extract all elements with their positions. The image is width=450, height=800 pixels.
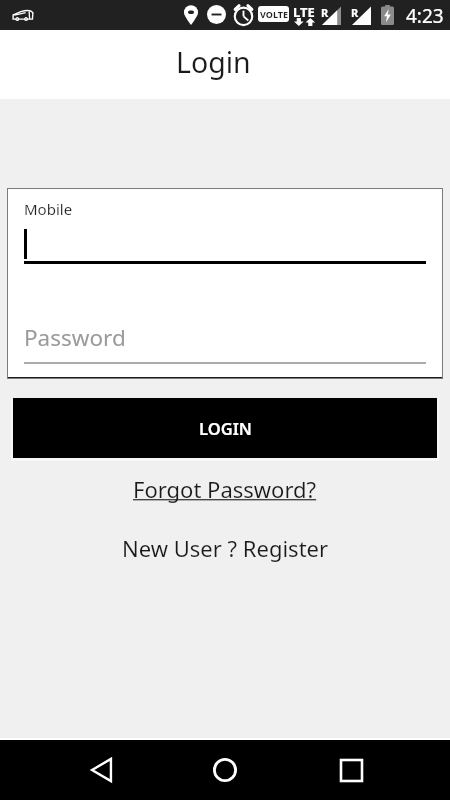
staticText: VOLTE (260, 8, 288, 20)
staticText: LOGIN (199, 417, 252, 439)
staticText: New User ? Register (122, 533, 329, 563)
button[interactable]: Forgot Password? (127, 472, 323, 506)
button[interactable]: New User ? Register (116, 531, 335, 565)
button[interactable]: Recent apps (324, 742, 380, 798)
staticText: R (321, 5, 329, 20)
button[interactable]: LOGIN (13, 398, 437, 458)
staticText: Forgot Password? (133, 474, 317, 504)
staticText: LTE (293, 3, 315, 21)
staticText: Login (176, 43, 251, 82)
staticText: Mobile (24, 199, 73, 219)
button[interactable]: Back (71, 742, 127, 798)
staticText: Password (24, 322, 126, 353)
button[interactable]: Home (197, 742, 253, 798)
staticText: 4:23 (406, 3, 444, 29)
staticText: R (351, 5, 359, 20)
